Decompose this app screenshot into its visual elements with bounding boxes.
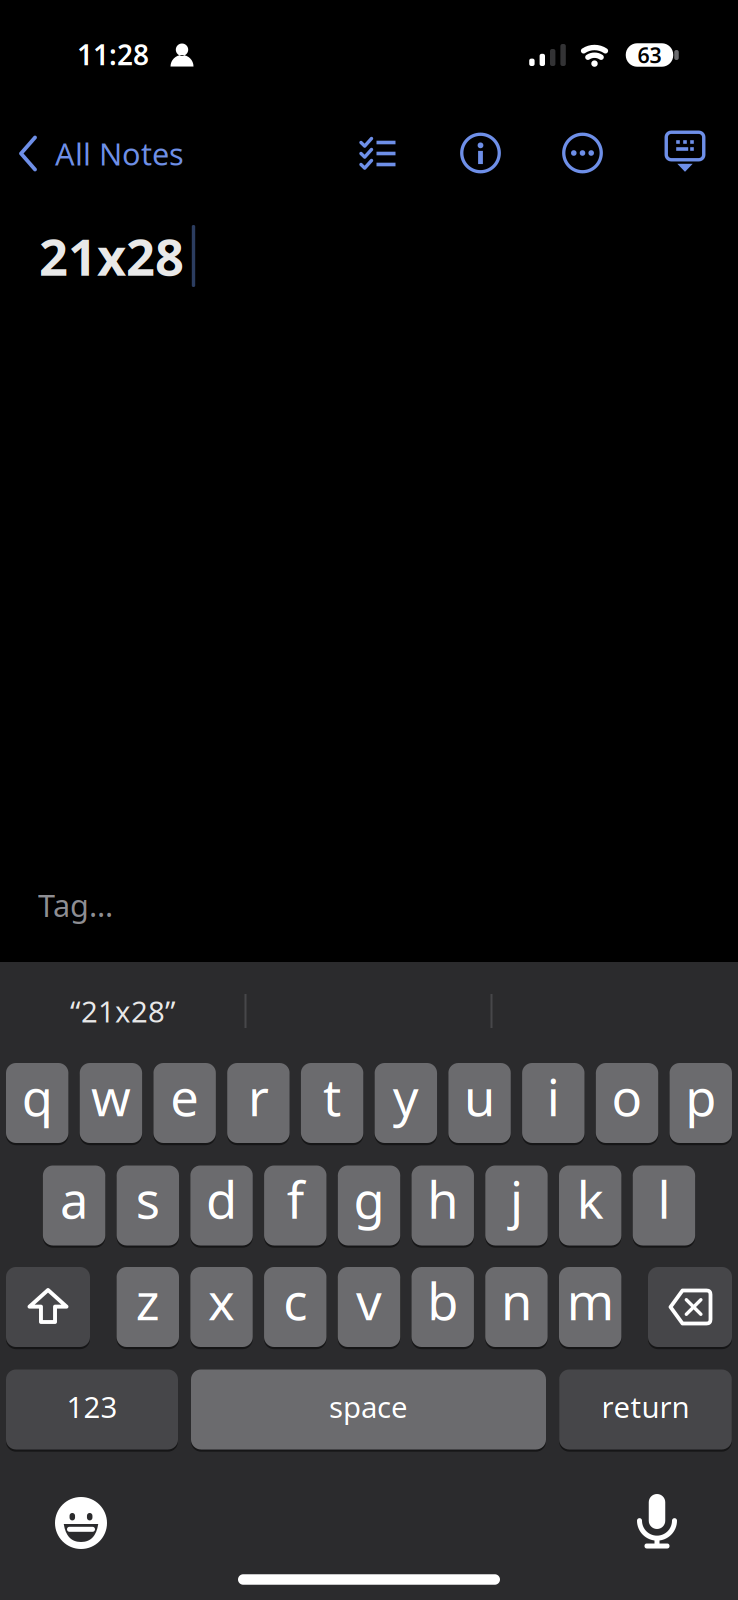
button[interactable]: d [190,1163,253,1247]
staticText: space [329,1387,408,1426]
button[interactable]: Back to All Notes [18,131,238,175]
staticText: t [323,1063,341,1130]
button[interactable]: 123 [6,1367,178,1451]
staticText: b [427,1267,458,1334]
button[interactable]: r [227,1061,290,1145]
button[interactable]: f [264,1163,326,1247]
button[interactable]: n [485,1265,548,1349]
button[interactable]: Dictation [635,1493,679,1549]
button[interactable]: q [6,1061,68,1145]
button[interactable]: w [80,1061,142,1145]
button[interactable]: g [338,1163,400,1247]
button[interactable]: a [43,1163,105,1247]
button[interactable]: b [411,1265,474,1349]
button[interactable]: p [670,1061,732,1145]
button[interactable]: j [485,1163,548,1247]
staticText: u [464,1063,495,1130]
staticText: 21x28 [39,222,184,290]
staticText: y [393,1063,419,1130]
staticText: r [248,1063,269,1130]
button[interactable]: Delete [648,1265,732,1349]
button[interactable]: v [338,1265,400,1349]
staticText: l [657,1165,670,1233]
button[interactable]: e [153,1061,216,1145]
staticText: g [353,1165,384,1233]
button[interactable]: i [522,1061,584,1145]
button[interactable]: t [301,1061,363,1145]
staticText: Tag... [38,885,113,925]
staticText: w [91,1063,131,1130]
staticText: return [601,1387,689,1426]
staticText: 11:28 [77,36,149,73]
staticText: i [547,1063,560,1130]
staticText: c [283,1267,307,1334]
staticText: 123 [66,1387,117,1426]
button[interactable]: x [190,1265,253,1349]
button[interactable]: z [117,1265,179,1349]
staticText: a [60,1165,88,1233]
staticText: q [22,1063,53,1130]
button[interactable]: More options [564,134,601,172]
staticText: m [567,1267,614,1334]
staticText: e [170,1063,199,1130]
staticText: z [136,1267,160,1334]
staticText: p [685,1063,716,1130]
staticText: k [577,1165,604,1233]
staticText: h [427,1165,458,1233]
button[interactable]: o [596,1061,658,1145]
button[interactable]: y [375,1061,437,1145]
staticText: d [206,1165,237,1233]
staticText: o [611,1063,642,1130]
staticText: “21x28” [70,991,176,1030]
staticText: f [287,1165,304,1233]
staticText: j [510,1165,523,1233]
button[interactable]: return [559,1367,732,1451]
staticText: 63 [637,41,661,69]
staticText: v [356,1267,382,1334]
button[interactable]: Dismiss keyboard [665,128,705,176]
button[interactable]: c [264,1265,326,1349]
staticText: All Notes [55,133,184,174]
button[interactable]: Note info [462,134,499,172]
button[interactable]: m [559,1265,621,1349]
button[interactable]: space [191,1367,546,1451]
button[interactable]: Checklist [360,137,395,169]
button[interactable]: l [633,1163,695,1247]
button[interactable]: “21x28” [0,961,245,1061]
staticText: x [208,1267,235,1334]
button[interactable]: Shift [6,1265,90,1349]
button[interactable]: Emoji [54,1496,108,1550]
staticText: n [501,1267,532,1334]
button[interactable]: k [559,1163,621,1247]
button[interactable]: u [448,1061,511,1145]
staticText: s [136,1165,160,1233]
button[interactable]: s [117,1163,179,1247]
button[interactable]: h [412,1163,474,1247]
